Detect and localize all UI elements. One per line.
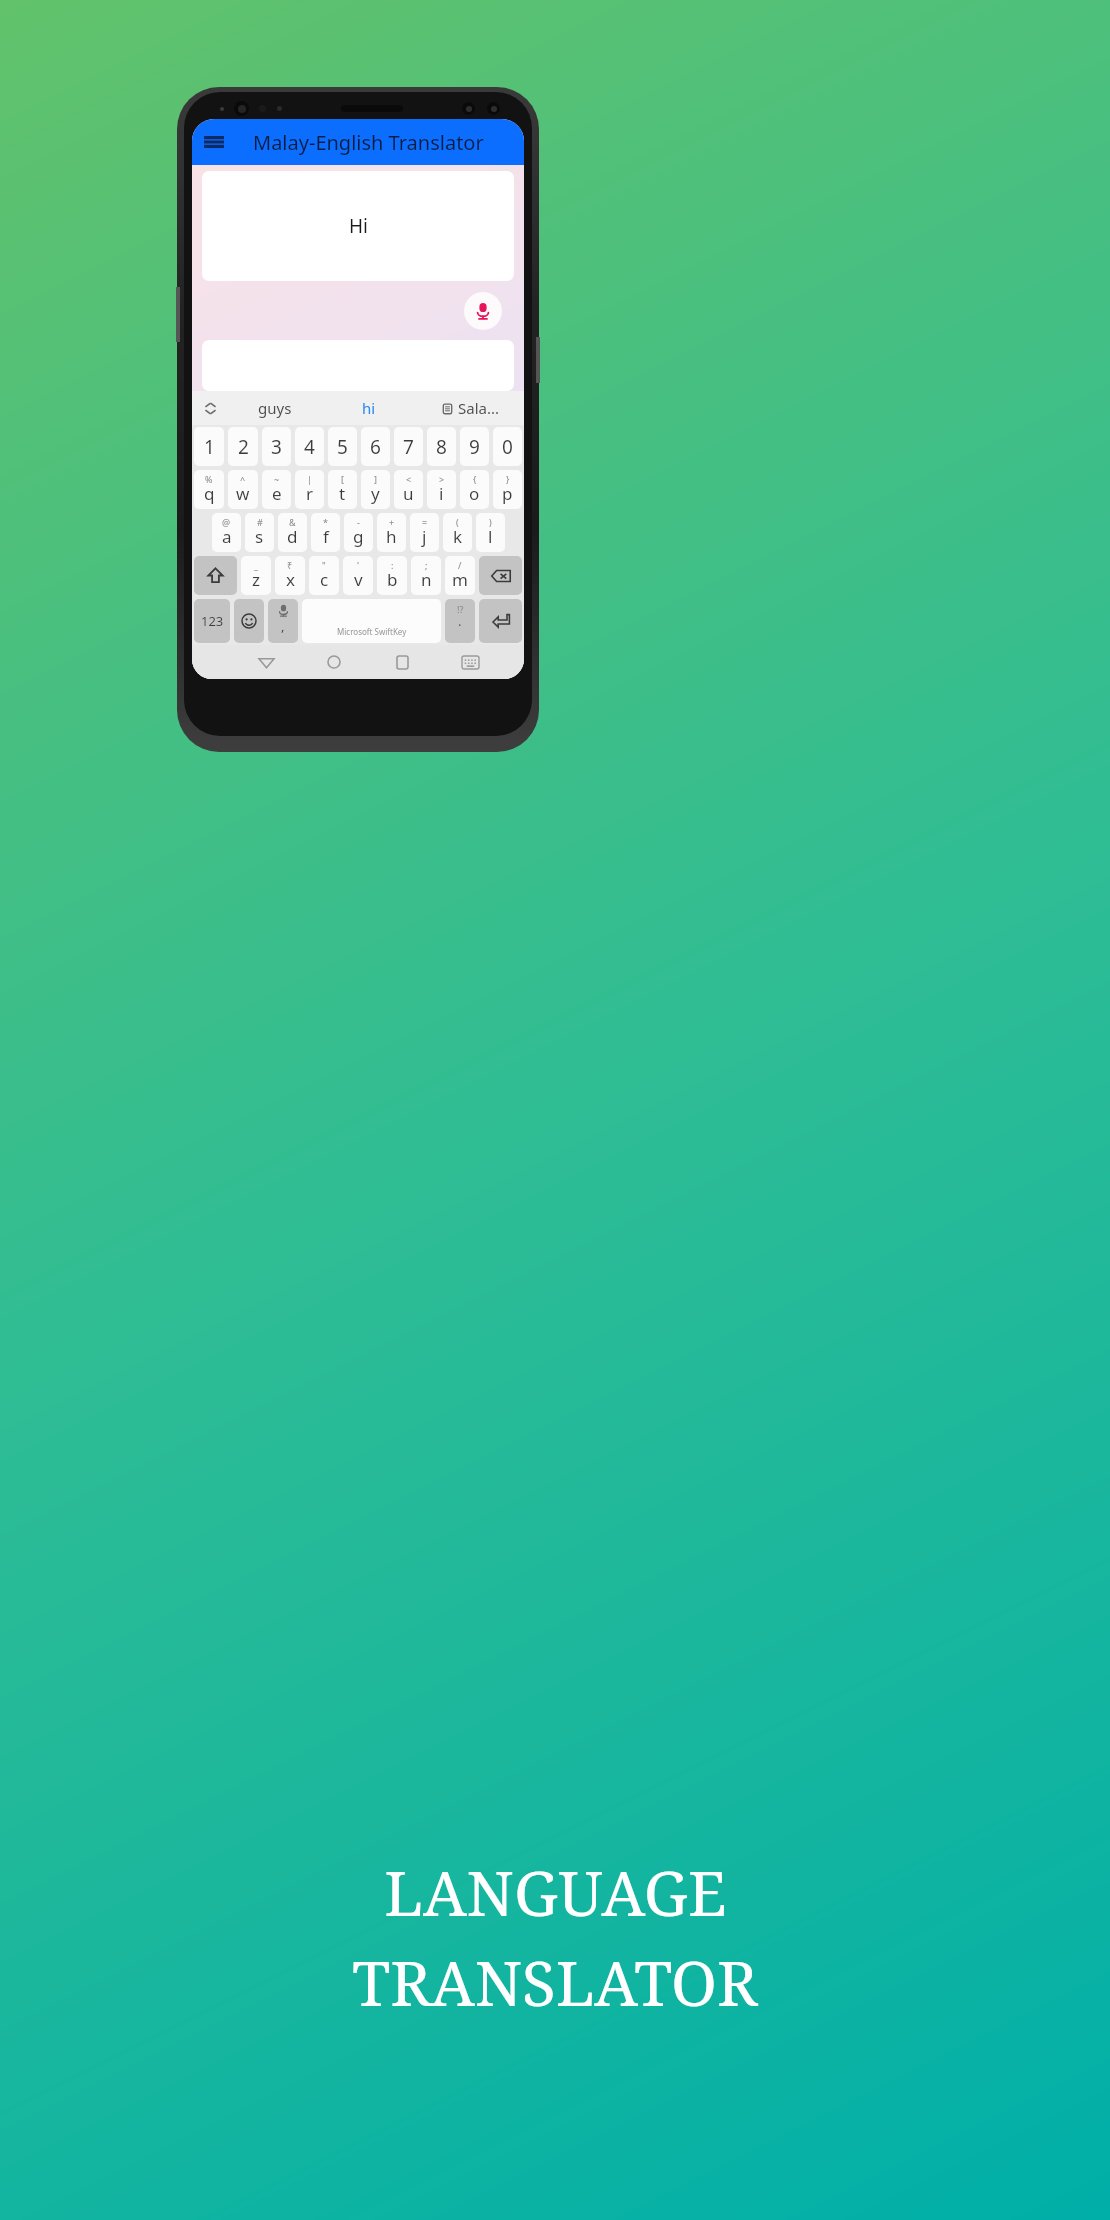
button[interactable]: ': [343, 556, 373, 595]
button[interactable]: Space: [302, 599, 441, 643]
staticText: *: [323, 516, 328, 528]
button[interactable]: 0: [493, 427, 522, 466]
button[interactable]: Back: [232, 645, 300, 679]
staticText: h: [386, 525, 397, 548]
button[interactable]: ~: [262, 470, 291, 509]
button[interactable]: Voice typing: [268, 599, 298, 643]
button[interactable]: Backspace: [479, 556, 522, 595]
button[interactable]: <: [394, 470, 423, 509]
button[interactable]: Sala...: [416, 391, 524, 425]
button[interactable]: ": [309, 556, 339, 595]
button[interactable]: (: [443, 513, 472, 552]
button[interactable]: Enter: [479, 599, 522, 643]
staticText: +: [389, 516, 395, 528]
staticText: (: [456, 516, 459, 528]
button[interactable]: Expand suggestions: [192, 391, 228, 425]
staticText: 9: [469, 434, 480, 460]
button[interactable]: :: [377, 556, 407, 595]
staticText: Sala...: [458, 398, 499, 418]
button[interactable]: 1: [194, 427, 224, 466]
button[interactable]: ): [476, 513, 505, 552]
staticText: n: [421, 568, 432, 591]
staticText: :: [391, 559, 394, 571]
button[interactable]: Voice input: [464, 292, 502, 330]
staticText: _: [254, 559, 258, 571]
staticText: z: [252, 568, 260, 591]
staticText: p: [502, 482, 513, 505]
button[interactable]: Emoji: [234, 599, 264, 643]
staticText: LANGUAGE: [384, 1850, 727, 1934]
staticText: 0: [502, 434, 513, 460]
staticText: -: [357, 516, 360, 528]
button[interactable]: ^: [228, 470, 258, 509]
staticText: Hi: [349, 213, 368, 239]
button[interactable]: 8: [427, 427, 456, 466]
button[interactable]: _: [241, 556, 271, 595]
button[interactable]: 6: [361, 427, 390, 466]
button[interactable]: Switch keyboard: [436, 645, 504, 679]
button[interactable]: ;: [411, 556, 441, 595]
staticText: TRANSLATOR: [352, 1940, 758, 2024]
staticText: x: [286, 568, 295, 591]
button[interactable]: [: [328, 470, 357, 509]
button[interactable]: !?: [445, 599, 475, 643]
button[interactable]: +: [377, 513, 406, 552]
staticText: i: [439, 482, 444, 505]
staticText: y: [371, 482, 380, 505]
staticText: &: [289, 516, 296, 528]
button[interactable]: %: [194, 470, 224, 509]
button[interactable]: ]: [361, 470, 390, 509]
staticText: Malay-English Translator: [253, 129, 484, 156]
staticText: r: [306, 482, 314, 505]
button[interactable]: #: [245, 513, 274, 552]
button[interactable]: 7: [394, 427, 423, 466]
staticText: ;: [425, 559, 428, 571]
staticText: 5: [337, 434, 348, 460]
button[interactable]: Recent apps: [368, 645, 436, 679]
staticText: {: [473, 473, 477, 485]
button[interactable]: @: [212, 513, 241, 552]
button[interactable]: /: [445, 556, 475, 595]
staticText: hi: [362, 398, 376, 418]
button[interactable]: 2: [228, 427, 258, 466]
button[interactable]: |: [295, 470, 324, 509]
button[interactable]: 123: [194, 599, 230, 643]
button[interactable]: Home: [300, 645, 368, 679]
staticText: ~: [274, 473, 280, 485]
button[interactable]: Hi: [202, 171, 514, 281]
button[interactable]: 3: [262, 427, 291, 466]
button[interactable]: 5: [328, 427, 357, 466]
staticText: m: [452, 568, 468, 591]
staticText: =: [422, 516, 428, 528]
staticText: 3: [271, 434, 282, 460]
button[interactable]: 9: [460, 427, 489, 466]
staticText: e: [272, 482, 282, 505]
staticText: ,: [281, 617, 285, 635]
button[interactable]: =: [410, 513, 439, 552]
button[interactable]: *: [311, 513, 340, 552]
button[interactable]: &: [278, 513, 307, 552]
button[interactable]: -: [344, 513, 373, 552]
staticText: j: [422, 525, 427, 548]
button[interactable]: hi: [322, 391, 416, 425]
staticText: ": [322, 559, 326, 571]
staticText: ]: [374, 473, 377, 485]
staticText: s: [255, 525, 264, 548]
button[interactable]: guys: [228, 391, 322, 425]
staticText: 6: [370, 434, 381, 460]
staticText: 1: [204, 434, 215, 460]
button[interactable]: Shift: [194, 556, 237, 595]
staticText: u: [403, 482, 414, 505]
staticText: l: [488, 525, 493, 548]
staticText: f: [323, 525, 329, 548]
button[interactable]: Open navigation menu: [192, 120, 236, 164]
staticText: guys: [258, 398, 292, 418]
button[interactable]: >: [427, 470, 456, 509]
button[interactable]: {: [460, 470, 489, 509]
button[interactable]: ₹: [275, 556, 305, 595]
staticText: Microsoft SwiftKey: [337, 626, 407, 637]
button[interactable]: }: [493, 470, 522, 509]
button[interactable]: 4: [295, 427, 324, 466]
staticText: <: [406, 473, 412, 485]
